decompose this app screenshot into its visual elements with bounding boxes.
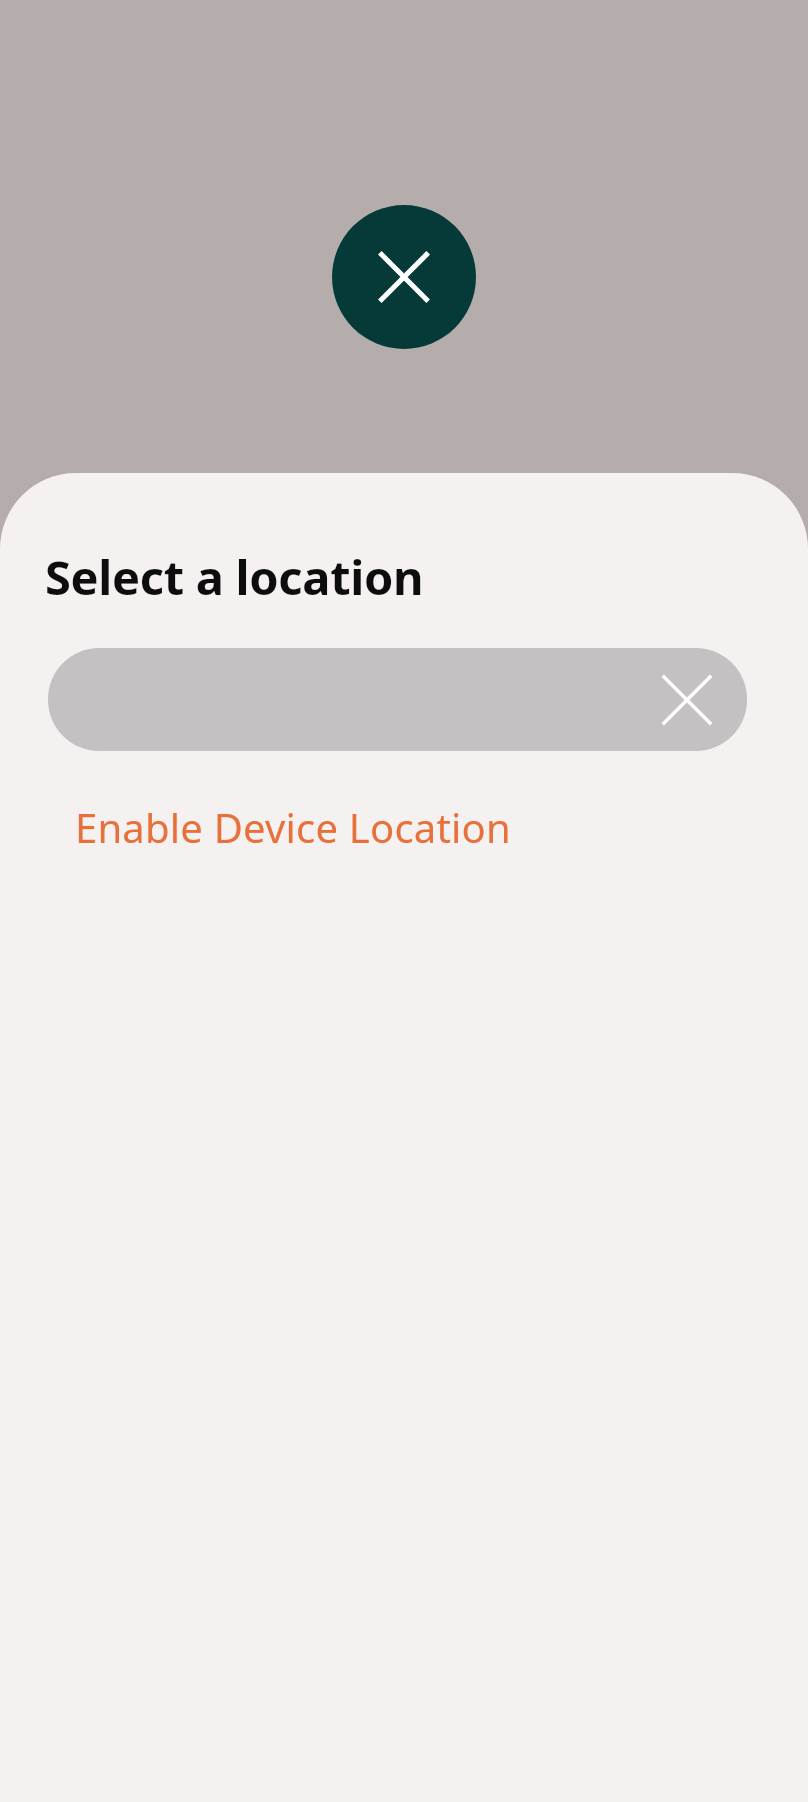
button[interactable]: Enable Device Location xyxy=(64,794,522,860)
staticText: Select a location xyxy=(45,545,424,609)
button[interactable]: Clear text xyxy=(651,664,723,736)
button[interactable]: Close xyxy=(332,205,476,349)
button[interactable]: Clear text xyxy=(48,648,747,751)
staticText: Enable Device Location xyxy=(75,800,511,854)
